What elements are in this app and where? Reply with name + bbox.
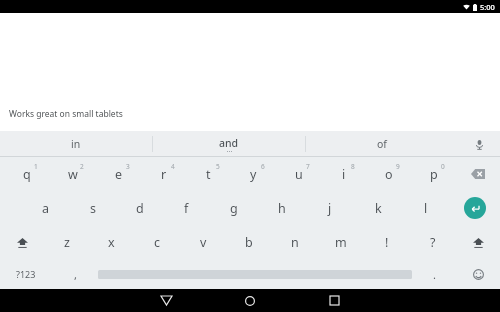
staticText: i xyxy=(342,166,346,183)
staticText: b xyxy=(245,234,253,251)
button[interactable]: Back xyxy=(124,289,208,312)
button[interactable]: m xyxy=(318,225,364,259)
staticText: s xyxy=(90,200,96,217)
staticText: 5 xyxy=(216,162,220,171)
button[interactable]: ?123 xyxy=(0,259,52,289)
button[interactable]: a xyxy=(22,191,69,225)
staticText: f xyxy=(184,200,189,217)
button[interactable]: d xyxy=(116,191,163,225)
button[interactable] xyxy=(98,259,412,289)
button[interactable]: Backspace xyxy=(456,157,500,191)
button[interactable]: g xyxy=(210,191,258,225)
staticText: 0 xyxy=(441,162,445,171)
button[interactable]: , xyxy=(52,259,98,289)
staticText: ! xyxy=(385,234,389,251)
button[interactable]: w xyxy=(50,157,96,191)
staticText: l xyxy=(424,200,428,217)
staticText: 4 xyxy=(171,162,175,171)
staticText: a xyxy=(42,200,50,217)
staticText: Works great on small tablets xyxy=(9,108,123,120)
button[interactable]: f xyxy=(163,191,210,225)
staticText: 5:00 xyxy=(480,2,495,12)
staticText: 9 xyxy=(396,162,400,171)
button[interactable]: q xyxy=(4,157,50,191)
button[interactable]: n xyxy=(272,225,318,259)
button[interactable]: Shift xyxy=(0,225,44,259)
staticText: e xyxy=(115,166,123,183)
button[interactable]: i xyxy=(321,157,366,191)
staticText: g xyxy=(230,200,238,217)
button[interactable]: u xyxy=(276,157,321,191)
button[interactable]: ! xyxy=(364,225,410,259)
staticText: j xyxy=(328,200,332,217)
button[interactable]: j xyxy=(306,191,354,225)
staticText: w xyxy=(68,166,78,183)
staticText: in xyxy=(71,137,81,151)
button[interactable]: z xyxy=(44,225,89,259)
button[interactable]: in xyxy=(0,131,152,157)
button[interactable]: Recents xyxy=(292,289,376,312)
button[interactable]: x xyxy=(89,225,134,259)
staticText: p xyxy=(430,166,438,183)
staticText: 2 xyxy=(80,162,84,171)
staticText: o xyxy=(385,166,393,183)
staticText: v xyxy=(200,234,207,251)
staticText: y xyxy=(250,166,257,183)
button[interactable]: p xyxy=(411,157,456,191)
button[interactable]: b xyxy=(226,225,272,259)
staticText: m xyxy=(335,234,347,251)
staticText: c xyxy=(154,234,161,251)
button[interactable]: r xyxy=(141,157,186,191)
staticText: 7 xyxy=(306,162,310,171)
button[interactable]: Emoji xyxy=(456,259,500,289)
staticText: d xyxy=(136,200,144,217)
staticText: u xyxy=(295,166,303,183)
button[interactable]: s xyxy=(69,191,116,225)
button[interactable]: t xyxy=(186,157,231,191)
staticText: ?123 xyxy=(16,268,36,280)
staticText: and xyxy=(219,136,239,150)
button[interactable]: Shift xyxy=(456,225,500,259)
staticText: 3 xyxy=(126,162,130,171)
staticText: h xyxy=(278,200,286,217)
button[interactable]: l xyxy=(402,191,450,225)
staticText: n xyxy=(291,234,299,251)
button[interactable]: and xyxy=(153,131,305,157)
staticText: , xyxy=(74,267,77,282)
staticText: r xyxy=(161,166,167,183)
button[interactable]: Enter xyxy=(450,191,500,225)
button[interactable]: Home xyxy=(208,289,292,312)
staticText: 1 xyxy=(34,162,38,171)
staticText: . xyxy=(433,267,436,282)
button[interactable]: of xyxy=(306,131,458,157)
staticText: t xyxy=(206,166,211,183)
button[interactable]: e xyxy=(96,157,141,191)
staticText: of xyxy=(377,137,387,151)
staticText: 8 xyxy=(351,162,355,171)
button[interactable]: h xyxy=(258,191,306,225)
button[interactable]: v xyxy=(180,225,226,259)
button[interactable]: ? xyxy=(410,225,456,259)
button[interactable]: c xyxy=(134,225,180,259)
staticText: q xyxy=(23,166,31,183)
button[interactable]: Voice input xyxy=(458,131,500,157)
staticText: z xyxy=(64,234,70,251)
staticText: x xyxy=(108,234,115,251)
button[interactable]: k xyxy=(354,191,402,225)
button[interactable]: o xyxy=(366,157,411,191)
staticText: ? xyxy=(430,234,436,251)
staticText: 6 xyxy=(261,162,265,171)
staticText: k xyxy=(375,200,382,217)
button[interactable]: y xyxy=(231,157,276,191)
button[interactable]: . xyxy=(412,259,456,289)
